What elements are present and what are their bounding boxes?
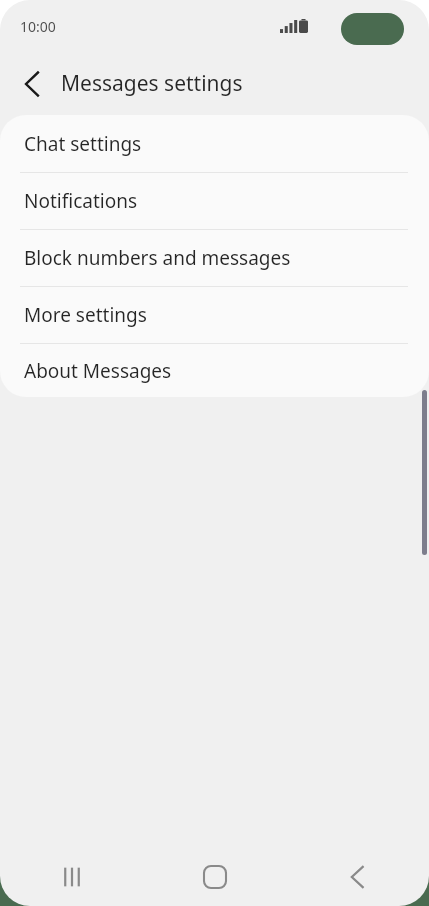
button[interactable]: Recent apps bbox=[0, 848, 143, 906]
button[interactable]: About Messages bbox=[0, 344, 429, 397]
button[interactable]: Home bbox=[143, 848, 286, 906]
staticText: 10:00 bbox=[20, 17, 56, 36]
staticText: More settings bbox=[24, 302, 147, 328]
button[interactable]: Back bbox=[10, 62, 54, 106]
staticText: Notifications bbox=[24, 188, 138, 214]
button[interactable]: More settings bbox=[0, 287, 429, 343]
button[interactable]: Chat settings bbox=[0, 115, 429, 172]
button[interactable]: Back bbox=[286, 848, 429, 906]
staticText: Chat settings bbox=[24, 131, 142, 157]
staticText: Messages settings bbox=[61, 69, 243, 98]
button[interactable]: Notifications bbox=[0, 173, 429, 229]
staticText: About Messages bbox=[24, 358, 172, 384]
staticText: Block numbers and messages bbox=[24, 245, 291, 271]
button[interactable]: Block numbers and messages bbox=[0, 230, 429, 286]
